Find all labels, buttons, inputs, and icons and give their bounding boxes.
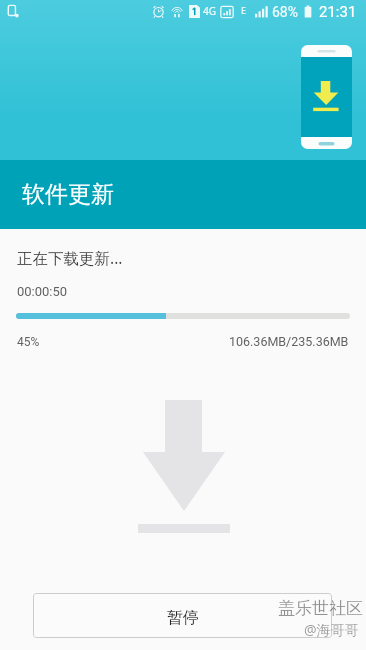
staticText: 45% (17, 335, 40, 349)
staticText: 盖乐世社区 (278, 598, 363, 619)
staticText: @海哥哥 (304, 620, 359, 639)
staticText: 4G (203, 4, 216, 18)
staticText: 106.36MB/235.36MB (229, 334, 349, 349)
button[interactable]: 暂停 (33, 593, 332, 638)
staticText: 21:31 (319, 3, 357, 21)
staticText: E (241, 4, 247, 16)
staticText: 暂停 (167, 608, 199, 628)
staticText: 68% (272, 4, 298, 20)
staticText: 正在下载更新... (17, 247, 123, 268)
staticText: 00:00:50 (17, 284, 68, 299)
staticText: 软件更新 (22, 180, 114, 209)
